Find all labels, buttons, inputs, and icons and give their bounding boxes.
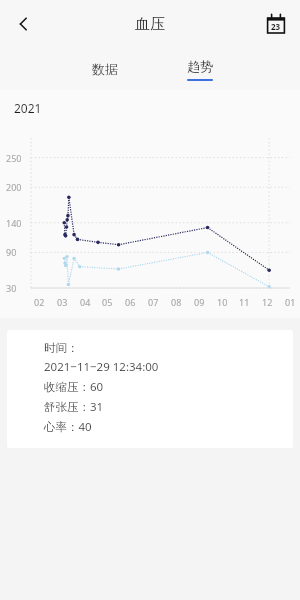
button[interactable]: Calendar xyxy=(258,6,294,42)
staticText: 10 xyxy=(217,296,228,308)
staticText: 23 xyxy=(271,21,281,32)
button[interactable]: 趋势 xyxy=(165,48,235,90)
staticText: 200 xyxy=(6,181,22,193)
staticText: 血压 xyxy=(135,15,165,34)
staticText: 2021 xyxy=(14,100,42,116)
button[interactable]: 时间： xyxy=(7,330,293,448)
staticText: 数据 xyxy=(92,61,118,77)
staticText: 07 xyxy=(148,296,159,308)
staticText: 趋势 xyxy=(187,58,213,74)
staticText: 心率：40 xyxy=(44,419,92,435)
staticText: 01 xyxy=(285,296,296,308)
staticText: 11 xyxy=(239,296,250,308)
staticText: 收缩压：60 xyxy=(44,379,104,395)
staticText: 90 xyxy=(6,246,17,258)
staticText: 04 xyxy=(80,296,91,308)
button[interactable]: 数据 xyxy=(70,48,140,90)
button[interactable]: Back xyxy=(6,6,42,42)
staticText: 06 xyxy=(125,296,136,308)
staticText: 250 xyxy=(6,152,22,164)
staticText: 08 xyxy=(171,296,182,308)
staticText: 140 xyxy=(6,217,22,229)
staticText: 09 xyxy=(194,296,205,308)
staticText: 2021−11−29 12:34:00 xyxy=(44,359,159,375)
staticText: 舒张压：31 xyxy=(44,399,104,415)
staticText: 时间： xyxy=(44,341,79,355)
staticText: 03 xyxy=(57,296,68,308)
staticText: 02 xyxy=(34,296,45,308)
staticText: 05 xyxy=(102,296,113,308)
staticText: 30 xyxy=(6,282,17,294)
staticText: 12 xyxy=(262,296,273,308)
